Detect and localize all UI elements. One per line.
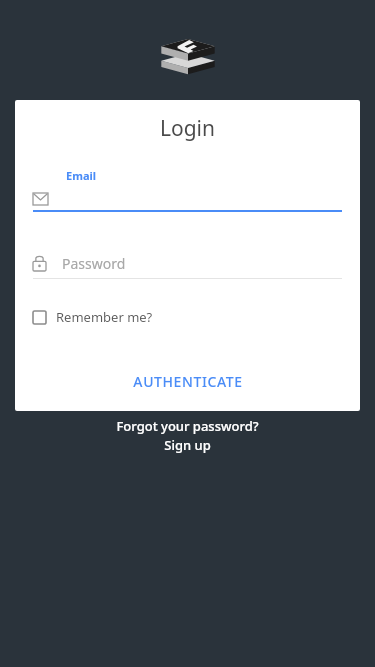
- other: App logo: [159, 30, 217, 78]
- button[interactable]: Forgot your password?: [116, 417, 259, 435]
- button[interactable]: Sign up: [164, 436, 211, 454]
- button[interactable]: AUTHENTICATE: [33, 364, 342, 399]
- staticText: Email: [66, 168, 97, 183]
- staticText: Password: [62, 254, 126, 272]
- staticText: Remember me?: [56, 308, 153, 326]
- button[interactable]: Remember me?: [33, 308, 153, 326]
- button[interactable]: Password: [33, 254, 342, 279]
- staticText: Login: [33, 114, 342, 143]
- button[interactable]: [33, 190, 342, 212]
- staticText: AUTHENTICATE: [133, 372, 243, 391]
